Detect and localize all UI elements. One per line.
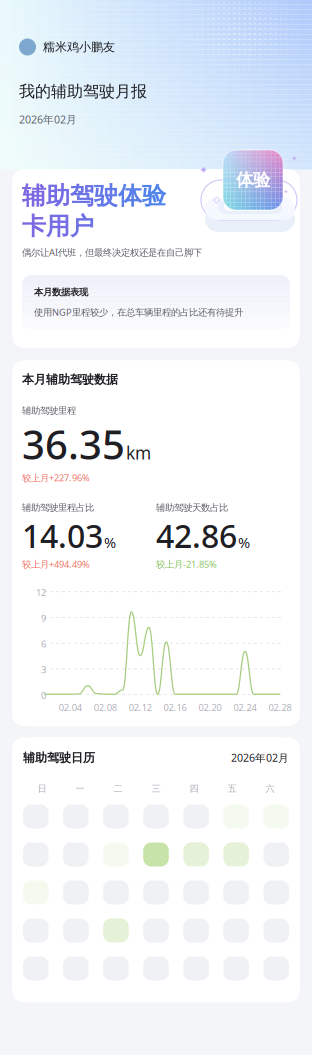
staticText: 驶 (94, 181, 118, 210)
staticText: 五 (227, 783, 236, 794)
staticText: 使用NGP里程较少，在总车辆里程的占比还有待提升 (34, 306, 243, 318)
staticText: 本月辅助驾驶数据 (22, 372, 118, 387)
staticText: 0 (41, 689, 46, 702)
staticText: 户 (70, 211, 94, 241)
staticText: 我的辅助驾驶月报 (19, 81, 147, 101)
staticText: 9 (41, 612, 46, 624)
staticText: 2026年02月 (231, 751, 289, 765)
staticText: 02.16 (164, 701, 187, 714)
staticText: 辅 (22, 181, 46, 210)
staticText: 36.35 (22, 417, 125, 470)
staticText: 体验 (236, 169, 270, 191)
staticText: 02.12 (129, 701, 152, 714)
staticText: 较上月+227.96% (22, 471, 90, 484)
staticText: ◇ (213, 194, 220, 205)
staticText: 驾 (70, 181, 94, 210)
staticText: 卡 (22, 211, 46, 241)
staticText: ✦ (291, 154, 298, 163)
staticText: 六 (265, 783, 274, 794)
staticText: 用 (46, 211, 70, 241)
staticText: 三 (151, 783, 160, 794)
staticText: 较上月-21.85% (156, 558, 217, 570)
staticText: % (104, 533, 116, 552)
staticText: 02.04 (59, 701, 82, 714)
staticText: 42.86 (156, 514, 237, 557)
staticText: 2026年02月 (19, 112, 77, 126)
staticText: 糯米鸡小鹏友 (43, 40, 115, 54)
staticText: 辅助驾驶天数占比 (156, 502, 228, 513)
staticText: 一 (75, 783, 84, 794)
staticText: 6 (41, 638, 46, 650)
staticText: km (126, 441, 151, 464)
staticText: 辅助驾驶日历 (23, 750, 95, 765)
staticText: 辅助驾驶里程占比 (22, 502, 94, 513)
staticText: 偶尔让AI代班，但最终决定权还是在自己脚下 (22, 246, 202, 258)
staticText: 助 (46, 181, 70, 210)
staticText: % (238, 533, 250, 552)
staticText: 体 (118, 181, 142, 210)
staticText: 3 (41, 663, 46, 676)
staticText: 14.03 (22, 514, 103, 557)
staticText: 02.08 (94, 701, 117, 714)
staticText: ✦ (199, 164, 208, 176)
staticText: 本月数据表现 (34, 286, 88, 298)
staticText: 较上月+494.49% (22, 558, 90, 570)
staticText: 验 (142, 181, 166, 210)
staticText: 12 (36, 586, 46, 599)
staticText: 二 (113, 783, 122, 794)
staticText: 02.20 (199, 701, 222, 714)
staticText: ✦ (283, 188, 289, 196)
staticText: 02.24 (233, 701, 256, 714)
staticText: 日 (37, 783, 46, 794)
staticText: 02.28 (268, 701, 291, 714)
staticText: 辅助驾驶里程 (22, 405, 76, 416)
staticText: 四 (189, 783, 198, 794)
button[interactable]: 糯米鸡小鹏友 (0, 38, 115, 55)
